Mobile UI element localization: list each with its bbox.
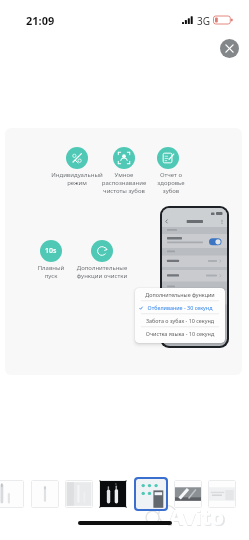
staticText: 21:09 [26,13,55,28]
staticText: Дополнительные функции очистки [68,264,136,280]
button[interactable]: Дополнительные функции [141,291,219,298]
staticText: Индивидуальный режим [45,171,109,187]
button[interactable]: Photo 1 [31,480,59,508]
staticText: 10s [45,246,57,256]
button[interactable]: Photo 5 [174,480,202,508]
staticText: Умное распознавание чистоты зубов [92,171,156,195]
staticText: Avito [168,502,226,532]
button[interactable]: Отбеливание - 30 секунд [141,304,219,311]
button[interactable]: feature 0 [66,147,88,169]
button[interactable]: Photo 2 [65,480,93,508]
button[interactable]: Photo 0 [0,480,24,508]
button[interactable]: feature 4 [91,240,113,262]
button[interactable]: feature 2 [157,147,179,169]
staticText: Отчет о здоровье зубов [145,171,197,195]
staticText: 3G [197,14,210,28]
button[interactable]: Selected photo [136,479,166,509]
button[interactable]: Забота о зубах - 10 секунд [141,317,219,324]
button[interactable]: Photo 3 [99,480,127,508]
button[interactable]: feature 3 [40,240,62,262]
button[interactable]: Photo 6 [208,480,236,508]
button[interactable]: Очистка языка - 10 секунд [141,330,219,337]
button[interactable]: Close [220,39,239,58]
button[interactable]: feature 1 [113,147,135,169]
staticText: Плавный пуск [25,264,77,280]
staticText: Avito [169,503,225,532]
